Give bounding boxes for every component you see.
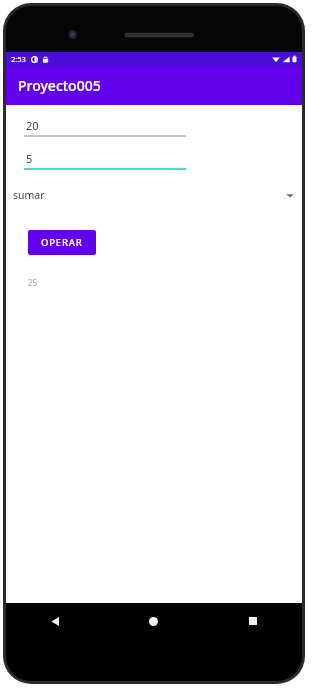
button[interactable]: Home (104, 603, 203, 639)
staticText: 25 (28, 277, 38, 288)
button[interactable]: sumar (6, 182, 302, 208)
staticText: 20 (26, 118, 39, 133)
staticText: OPERAR (41, 236, 83, 249)
button[interactable]: 20 (24, 118, 186, 138)
button[interactable]: Recent apps (203, 603, 302, 639)
staticText: 2:53 (11, 54, 26, 64)
button[interactable]: OPERAR (28, 230, 96, 255)
button[interactable]: 5 (24, 151, 186, 171)
button[interactable]: Back (6, 603, 104, 639)
staticText: sumar (13, 188, 45, 202)
staticText: Proyecto005 (18, 76, 101, 95)
staticText: 5 (26, 151, 33, 166)
